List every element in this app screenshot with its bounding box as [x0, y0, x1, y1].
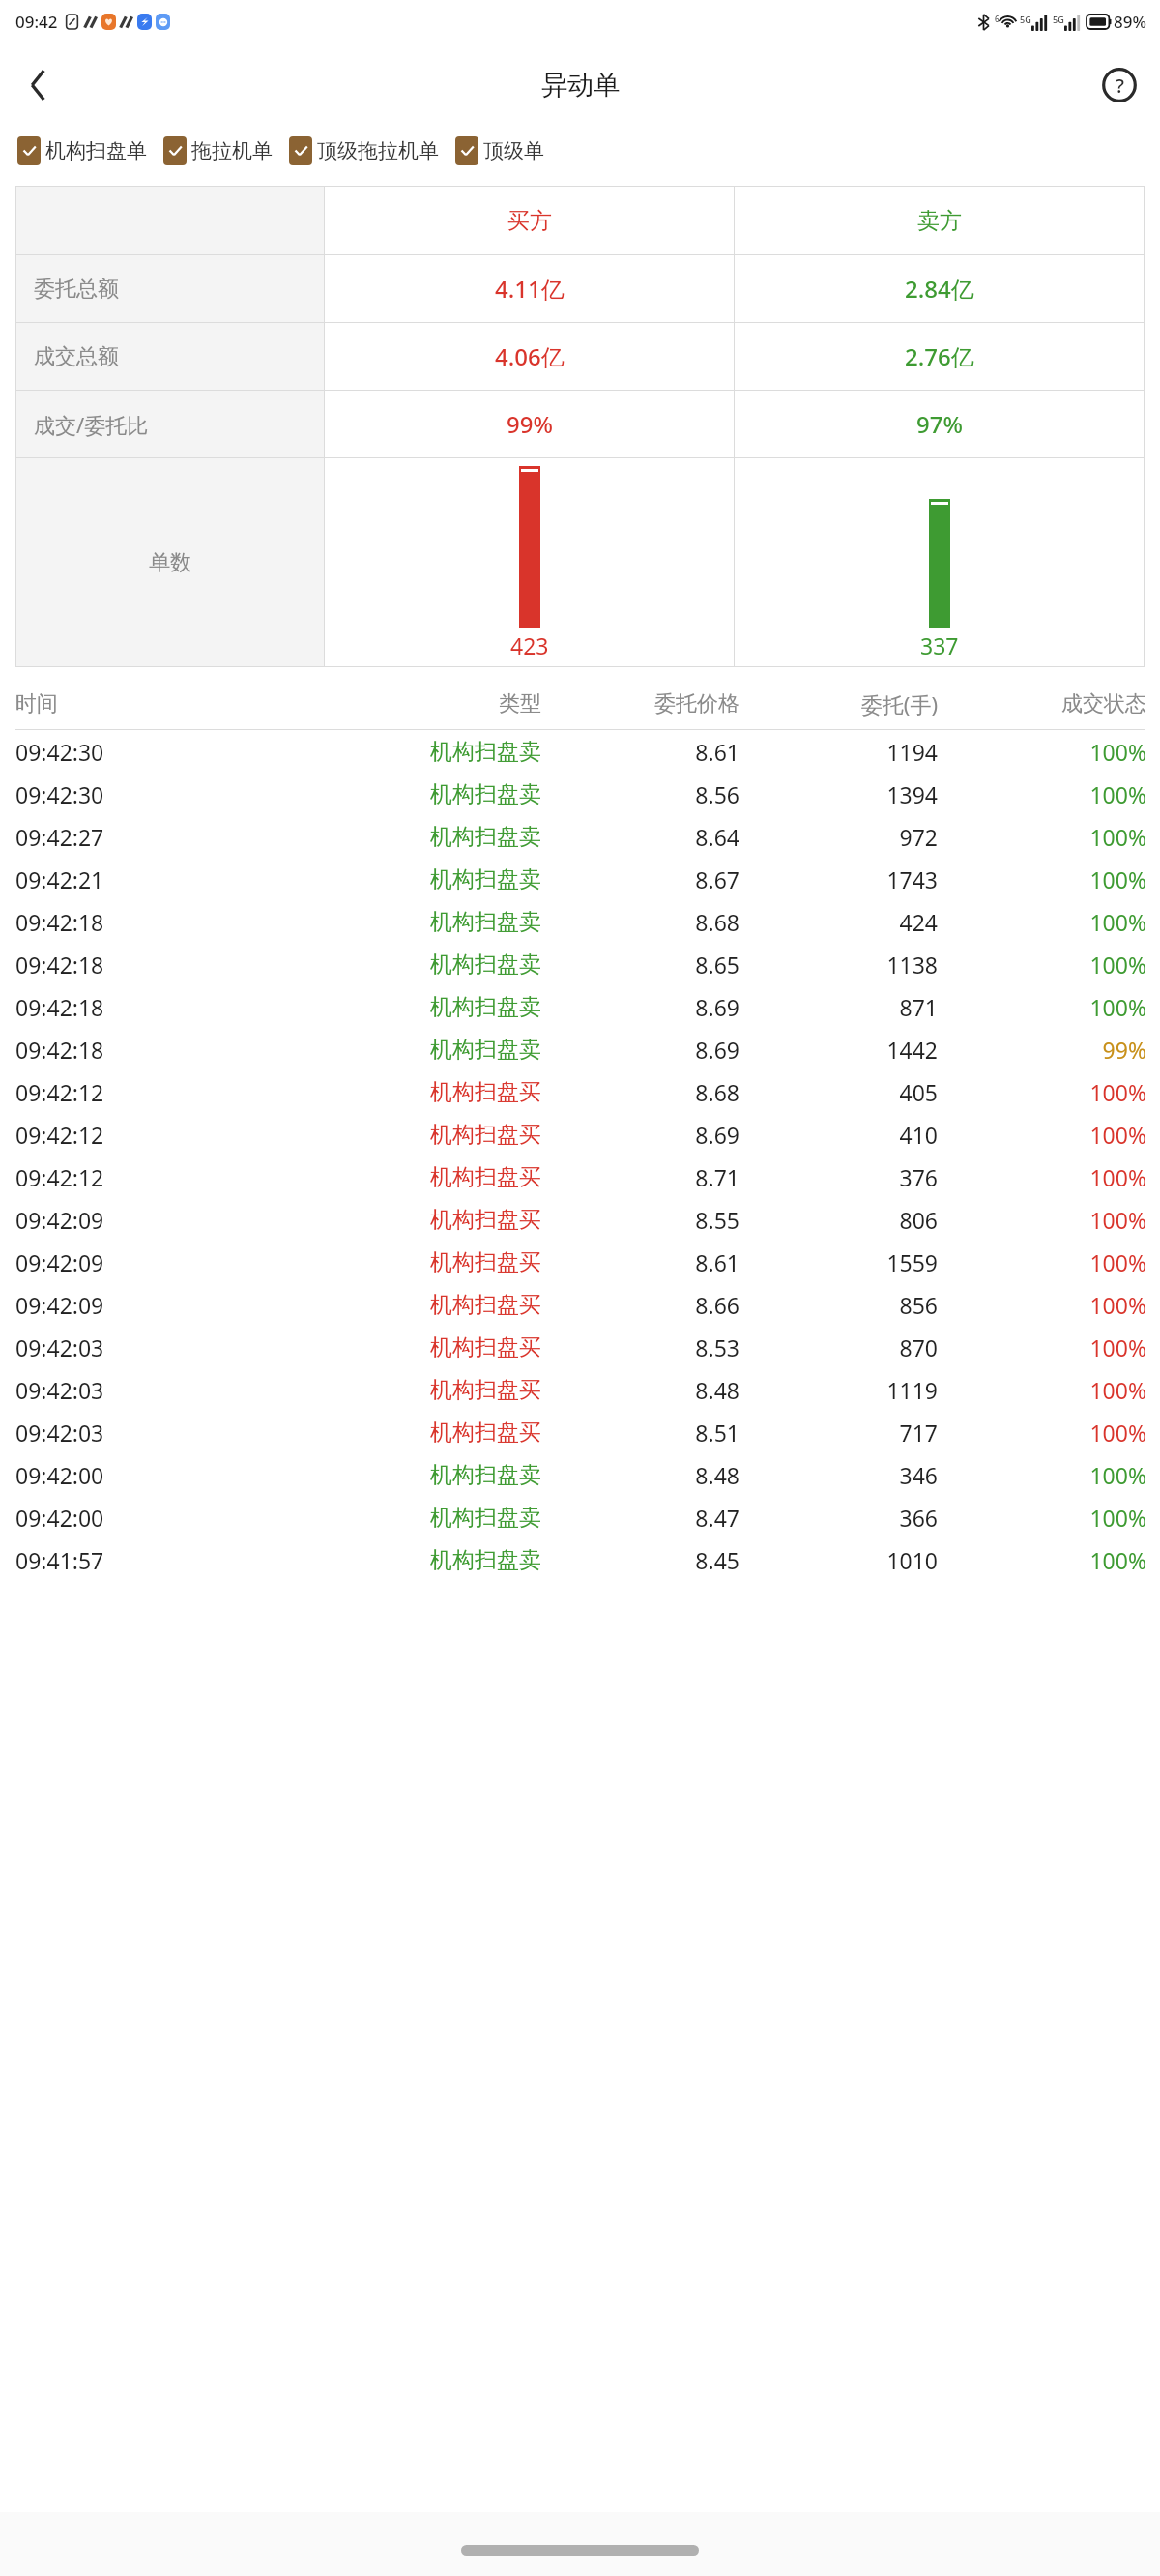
button[interactable]: 09:42:09: [0, 1283, 1160, 1326]
staticText: 100%: [938, 1418, 1146, 1448]
staticText: 1194: [739, 737, 938, 767]
staticText: 8.45: [541, 1545, 739, 1575]
staticText: 100%: [938, 1290, 1146, 1320]
staticText: 09:42:30: [15, 737, 304, 767]
button[interactable]: 09:42:18: [0, 985, 1160, 1028]
staticText: 4.11亿: [495, 273, 565, 305]
staticText: 1138: [739, 950, 938, 980]
staticText: 8.48: [541, 1375, 739, 1405]
staticText: 100%: [938, 1503, 1146, 1533]
staticText: 8.68: [541, 907, 739, 937]
button[interactable]: 09:42:30: [0, 773, 1160, 815]
staticText: 100%: [938, 1205, 1146, 1235]
staticText: 09:42: [15, 11, 58, 33]
button[interactable]: 09:41:57: [0, 1538, 1160, 1581]
staticText: 机构扫盘买: [304, 1078, 541, 1106]
staticText: 100%: [938, 950, 1146, 980]
button[interactable]: 09:42:30: [0, 730, 1160, 773]
staticText: 异动单: [541, 69, 620, 102]
staticText: 100%: [938, 1460, 1146, 1490]
button[interactable]: 09:42:18: [0, 1028, 1160, 1070]
button[interactable]: 09:42:03: [0, 1326, 1160, 1368]
staticText: 单数: [149, 549, 191, 576]
staticText: 机构扫盘买: [304, 1291, 541, 1319]
staticText: 8.71: [541, 1162, 739, 1192]
button[interactable]: Help: [1092, 58, 1146, 112]
staticText: 09:42:18: [15, 992, 304, 1022]
staticText: 09:41:57: [15, 1545, 304, 1575]
staticText: 6: [995, 14, 1000, 24]
staticText: 机构扫盘卖: [304, 951, 541, 979]
staticText: 09:42:03: [15, 1418, 304, 1448]
staticText: 1743: [739, 864, 938, 894]
staticText: 8.64: [541, 822, 739, 852]
staticText: 871: [739, 992, 938, 1022]
staticText: 5G: [1020, 14, 1031, 25]
staticText: 100%: [938, 1120, 1146, 1150]
button[interactable]: 09:42:09: [0, 1241, 1160, 1283]
staticText: 100%: [938, 1375, 1146, 1405]
staticText: 806: [739, 1205, 938, 1235]
button[interactable]: 09:42:12: [0, 1113, 1160, 1156]
staticText: 机构扫盘卖: [304, 780, 541, 808]
staticText: 2.84亿: [905, 273, 974, 305]
button[interactable]: 09:42:27: [0, 815, 1160, 858]
button[interactable]: 09:42:00: [0, 1453, 1160, 1496]
staticText: 99%: [507, 408, 553, 440]
staticText: 09:42:12: [15, 1077, 304, 1107]
staticText: 99%: [938, 1035, 1146, 1065]
staticText: 成交总额: [34, 343, 324, 370]
staticText: 委托价格: [541, 690, 739, 717]
staticText: 100%: [938, 779, 1146, 809]
staticText: 机构扫盘卖: [304, 1546, 541, 1574]
staticText: 1559: [739, 1247, 938, 1277]
staticText: 顶级拖拉机单: [317, 138, 439, 163]
staticText: 机构扫盘单: [45, 138, 147, 163]
button[interactable]: 09:42:00: [0, 1496, 1160, 1538]
staticText: 8.69: [541, 1035, 739, 1065]
staticText: 09:42:09: [15, 1205, 304, 1235]
button[interactable]: 09:42:21: [0, 858, 1160, 900]
staticText: 8.48: [541, 1460, 739, 1490]
staticText: 时间: [15, 690, 304, 717]
staticText: 机构扫盘买: [304, 1248, 541, 1276]
staticText: 09:42:18: [15, 950, 304, 980]
staticText: 委托(手): [739, 689, 938, 718]
staticText: 100%: [938, 1247, 1146, 1277]
button[interactable]: 09:42:12: [0, 1156, 1160, 1198]
button[interactable]: 顶级单: [455, 136, 544, 165]
staticText: 346: [739, 1460, 938, 1490]
button[interactable]: 拖拉机单: [163, 136, 273, 165]
staticText: 机构扫盘卖: [304, 993, 541, 1021]
button[interactable]: 机构扫盘单: [17, 136, 147, 165]
button[interactable]: 09:42:09: [0, 1198, 1160, 1241]
staticText: 09:42:12: [15, 1162, 304, 1192]
staticText: 09:42:09: [15, 1290, 304, 1320]
staticText: 拖拉机单: [191, 138, 273, 163]
staticText: 8.55: [541, 1205, 739, 1235]
staticText: 8.68: [541, 1077, 739, 1107]
staticText: 8.69: [541, 992, 739, 1022]
staticText: 410: [739, 1120, 938, 1150]
button[interactable]: 顶级拖拉机单: [289, 136, 439, 165]
staticText: 856: [739, 1290, 938, 1320]
staticText: 09:42:03: [15, 1375, 304, 1405]
staticText: 89%: [1114, 11, 1146, 33]
staticText: 8.61: [541, 1247, 739, 1277]
staticText: 100%: [938, 1162, 1146, 1192]
staticText: 机构扫盘卖: [304, 1504, 541, 1532]
button[interactable]: 09:42:03: [0, 1411, 1160, 1453]
button[interactable]: Back: [10, 56, 68, 114]
staticText: 09:42:30: [15, 779, 304, 809]
button[interactable]: 09:42:18: [0, 943, 1160, 985]
staticText: 成交/委托比: [34, 410, 324, 439]
staticText: 09:42:00: [15, 1460, 304, 1490]
staticText: 类型: [304, 690, 541, 717]
button[interactable]: 09:42:18: [0, 900, 1160, 943]
button[interactable]: 09:42:12: [0, 1070, 1160, 1113]
staticText: 机构扫盘买: [304, 1333, 541, 1361]
staticText: 委托总额: [34, 276, 324, 303]
staticText: 8.66: [541, 1290, 739, 1320]
button[interactable]: 09:42:03: [0, 1368, 1160, 1411]
staticText: 717: [739, 1418, 938, 1448]
